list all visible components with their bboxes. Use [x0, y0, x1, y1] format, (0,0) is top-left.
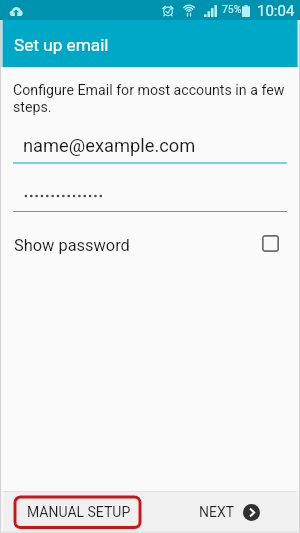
staticText: Configure Email for most accounts in a f…	[13, 82, 300, 116]
button[interactable]: MANUAL SETUP	[0, 491, 158, 533]
staticText: Show password	[14, 236, 130, 255]
button[interactable]: NEXT	[158, 491, 300, 533]
staticText: 10:04	[257, 2, 295, 20]
staticText: name@example.com	[23, 135, 196, 156]
staticText: Set up email	[14, 35, 109, 55]
staticText: NEXT	[199, 504, 235, 520]
other: Cloud upload	[9, 6, 23, 16]
staticText: 75%	[222, 3, 242, 15]
button[interactable]: Show password	[0, 229, 300, 261]
staticText: MANUAL SETUP	[27, 504, 131, 520]
